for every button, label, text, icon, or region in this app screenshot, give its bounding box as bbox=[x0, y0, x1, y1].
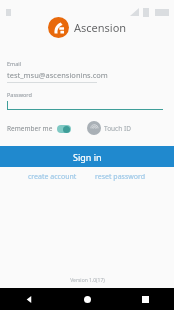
button[interactable]: Touch ID bbox=[87, 121, 131, 135]
staticText: Password bbox=[7, 91, 32, 98]
button[interactable]: Sign in bbox=[0, 146, 174, 167]
button[interactable]: Back bbox=[20, 290, 38, 308]
staticText: Touch ID bbox=[104, 124, 131, 133]
staticText: Version 1.0(17) bbox=[70, 277, 105, 284]
staticText: create account bbox=[28, 172, 77, 182]
button[interactable]: Home bbox=[78, 290, 96, 308]
staticText: test_msu@ascensionins.com bbox=[7, 70, 108, 80]
button[interactable]: Recent apps bbox=[136, 290, 154, 308]
staticText: Sign in bbox=[73, 151, 102, 163]
button[interactable]: Remember me bbox=[7, 124, 71, 133]
button[interactable]: reset password bbox=[91, 171, 150, 183]
staticText: Ascension bbox=[74, 20, 127, 35]
staticText: Remember me bbox=[7, 124, 53, 133]
staticText: reset password bbox=[95, 172, 146, 182]
button[interactable]: create account bbox=[24, 171, 81, 183]
staticText: Email bbox=[7, 60, 22, 67]
